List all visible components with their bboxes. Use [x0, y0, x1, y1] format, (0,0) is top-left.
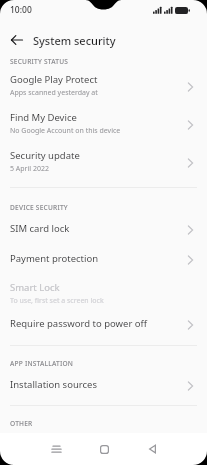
button[interactable]	[0, 26, 33, 54]
staticText: No Google Account on this device	[10, 126, 121, 136]
staticText: To use, first set a screen lock	[10, 296, 104, 306]
button[interactable]: Smart Lock	[0, 275, 207, 310]
staticText: Require password to power off	[10, 317, 148, 330]
button[interactable]: Require password to power off	[0, 310, 207, 340]
staticText: Apps scanned yesterday at	[10, 88, 98, 98]
staticText: APP INSTALLATION	[10, 359, 74, 368]
staticText: 5 April 2022	[10, 164, 49, 174]
button[interactable]: Payment protection	[0, 245, 207, 275]
button[interactable]: Security update	[0, 144, 207, 182]
staticText: Find My Device	[10, 111, 77, 124]
staticText: 10:00	[10, 4, 32, 16]
staticText: System security	[33, 33, 116, 48]
button[interactable]: Find My Device	[0, 106, 207, 144]
button[interactable]: Google Play Protect	[0, 68, 207, 106]
staticText: SIM card lock	[10, 222, 70, 235]
staticText: Smart Lock	[10, 281, 60, 294]
button[interactable]	[84, 433, 124, 465]
button[interactable]	[36, 433, 76, 465]
staticText: SECURITY STATUS	[10, 57, 69, 66]
staticText: Payment protection	[10, 252, 99, 265]
staticText: DEVICE SECURITY	[10, 203, 68, 212]
staticText: Installation sources	[10, 378, 97, 391]
button[interactable]: SIM card lock	[0, 215, 207, 245]
staticText: Google Play Protect	[10, 73, 98, 86]
button[interactable]: Installation sources	[0, 371, 207, 401]
button[interactable]	[132, 433, 172, 465]
staticText: OTHER	[10, 419, 33, 428]
staticText: Security update	[10, 149, 80, 162]
